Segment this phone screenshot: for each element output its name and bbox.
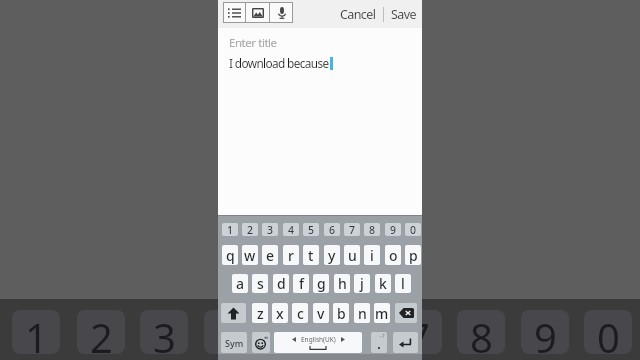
button[interactable]: x xyxy=(272,303,288,323)
button[interactable]: j xyxy=(354,274,370,293)
button[interactable]: 4 xyxy=(283,223,299,236)
button[interactable]: Save xyxy=(391,6,416,23)
button[interactable]: o xyxy=(385,245,401,265)
button[interactable] xyxy=(270,2,293,23)
staticText: r xyxy=(288,246,294,265)
button[interactable]: w xyxy=(242,245,258,265)
button[interactable]: s xyxy=(252,274,268,293)
staticText: e xyxy=(266,246,275,265)
button[interactable]: b xyxy=(333,303,349,323)
staticText: m xyxy=(375,304,389,323)
staticText: Enter title xyxy=(229,35,277,51)
button[interactable]: d xyxy=(273,274,289,293)
staticText: v xyxy=(317,304,325,323)
staticText: n xyxy=(358,304,367,323)
button[interactable]: h xyxy=(334,274,350,293)
staticText: 9 xyxy=(534,310,557,354)
staticText: p xyxy=(409,246,418,265)
staticText: 4 xyxy=(288,223,295,236)
staticText: 9 xyxy=(390,223,397,236)
button[interactable] xyxy=(393,332,418,353)
button[interactable]: 1 xyxy=(222,223,238,236)
button[interactable]: 5 xyxy=(303,223,319,236)
button[interactable]: l xyxy=(395,274,411,293)
button[interactable]: 7 xyxy=(344,223,360,236)
staticText: 0 xyxy=(597,310,620,354)
staticText: 3 xyxy=(267,223,274,236)
staticText: Save xyxy=(391,6,416,23)
button[interactable] xyxy=(246,2,269,23)
staticText: z xyxy=(257,304,264,323)
staticText: 6 xyxy=(329,223,336,236)
button[interactable]: 8 xyxy=(364,223,380,236)
button[interactable]: r xyxy=(283,245,299,265)
staticText: b xyxy=(337,304,346,323)
button[interactable]: 2 xyxy=(242,223,258,236)
button[interactable] xyxy=(252,332,270,353)
staticText: h xyxy=(338,274,347,293)
button[interactable]: f xyxy=(293,274,309,293)
staticText: f xyxy=(299,274,304,293)
button[interactable]: 3 xyxy=(262,223,278,236)
button[interactable]: 9 xyxy=(385,223,401,236)
button[interactable]: 6 xyxy=(324,223,340,236)
button[interactable] xyxy=(221,303,246,323)
button[interactable]: z xyxy=(252,303,268,323)
staticText: 4 xyxy=(217,310,240,354)
staticText: Sym xyxy=(225,337,244,349)
button[interactable]: p xyxy=(405,245,421,265)
button[interactable]: ··? xyxy=(371,332,387,353)
button[interactable]: v xyxy=(313,303,329,323)
button[interactable]: English(UK) xyxy=(274,332,362,353)
staticText: y xyxy=(328,246,336,265)
staticText: g xyxy=(317,274,326,293)
button[interactable]: i xyxy=(364,245,380,265)
staticText: ··? xyxy=(380,333,385,339)
staticText: English(UK) xyxy=(301,335,336,344)
staticText: 1 xyxy=(227,223,234,236)
staticText: t xyxy=(308,246,314,265)
button[interactable]: y xyxy=(324,245,340,265)
staticText: 1 xyxy=(25,310,48,354)
button[interactable]: u xyxy=(344,245,360,265)
staticText: 8 xyxy=(470,310,493,354)
button[interactable]: n xyxy=(354,303,370,323)
staticText: l xyxy=(401,274,405,293)
button[interactable]: Sym xyxy=(221,332,247,353)
staticText: 5 xyxy=(308,223,315,236)
staticText: x xyxy=(276,304,284,323)
button[interactable] xyxy=(395,303,417,323)
staticText: I download because xyxy=(229,55,329,71)
staticText: u xyxy=(348,246,357,265)
button[interactable]: t xyxy=(303,245,319,265)
button[interactable]: m xyxy=(374,303,390,323)
staticText: o xyxy=(389,246,398,265)
staticText: q xyxy=(226,246,235,265)
staticText: w xyxy=(244,246,256,265)
button[interactable]: a xyxy=(232,274,248,293)
button[interactable]: 0 xyxy=(405,223,421,236)
staticText: i xyxy=(370,246,374,265)
staticText: k xyxy=(379,274,387,293)
button[interactable]: c xyxy=(292,303,308,323)
staticText: s xyxy=(257,274,264,293)
staticText: d xyxy=(277,274,286,293)
button[interactable]: Cancel xyxy=(340,6,376,23)
staticText: j xyxy=(360,274,364,293)
staticText: c xyxy=(297,304,304,323)
staticText: 7 xyxy=(349,223,356,236)
button[interactable]: g xyxy=(313,274,329,293)
button[interactable] xyxy=(223,2,245,23)
staticText: 2 xyxy=(90,310,113,354)
staticText: 3 xyxy=(153,310,176,354)
button[interactable]: k xyxy=(375,274,391,293)
staticText: 7 xyxy=(407,310,430,354)
staticText: Cancel xyxy=(340,6,376,23)
staticText: 0 xyxy=(410,223,417,236)
staticText: 2 xyxy=(247,223,254,236)
staticText: 8 xyxy=(369,223,376,236)
button[interactable]: q xyxy=(222,245,238,265)
staticText: a xyxy=(236,274,245,293)
button[interactable]: e xyxy=(262,245,278,265)
